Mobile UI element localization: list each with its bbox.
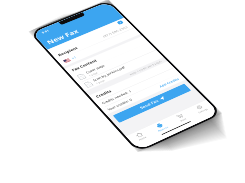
staticText: (877) 596-2303: [102, 25, 129, 38]
button[interactable]: Your credits:: [101, 74, 186, 115]
button[interactable]: Settings: [186, 100, 216, 118]
button[interactable]: Cover page: [71, 43, 156, 83]
staticText: Note: 1 credits per 5 pages: [129, 60, 162, 76]
button[interactable]: Home: [126, 127, 156, 146]
staticText: Scan by_jenkins.pdf: [92, 65, 126, 82]
button[interactable]: Fax Content: [65, 36, 149, 76]
button[interactable]: +1: [57, 28, 140, 67]
staticText: Cover page: [85, 64, 106, 74]
button[interactable]: Credits: [89, 61, 174, 102]
staticText: +1: [70, 55, 78, 60]
button[interactable]: Recipient: [51, 22, 134, 60]
staticText: 9:41: [41, 29, 50, 34]
staticText: Fax Content: [70, 58, 98, 72]
staticText: Your credits:: [106, 99, 130, 111]
staticText: New Fax: [45, 27, 80, 46]
staticText: Settings: [197, 108, 208, 114]
staticText: 0: [128, 98, 133, 102]
staticText: Credits needed:: [101, 91, 129, 105]
button[interactable]: Scan by_jenkins.pdf: [78, 50, 163, 91]
staticText: New Fax: [157, 126, 169, 132]
button[interactable]: Information: [116, 20, 124, 25]
button[interactable]: Send Fax: [113, 83, 191, 123]
staticText: 1: [127, 89, 133, 93]
staticText: 1 page: [95, 79, 105, 85]
staticText: Recipient: [57, 46, 79, 57]
staticText: Credits: [95, 89, 113, 99]
button[interactable]: Credits needed:: [95, 68, 180, 108]
staticText: Store: [179, 117, 187, 122]
staticText: i: [118, 21, 122, 24]
button[interactable]: Store: [166, 109, 196, 128]
button[interactable]: New Fax: [146, 118, 176, 137]
staticText: Send Fax: [138, 98, 160, 110]
staticText: 1 page: [88, 71, 98, 77]
staticText: Home: [138, 136, 147, 141]
button[interactable]: Add Credits: [158, 77, 180, 88]
